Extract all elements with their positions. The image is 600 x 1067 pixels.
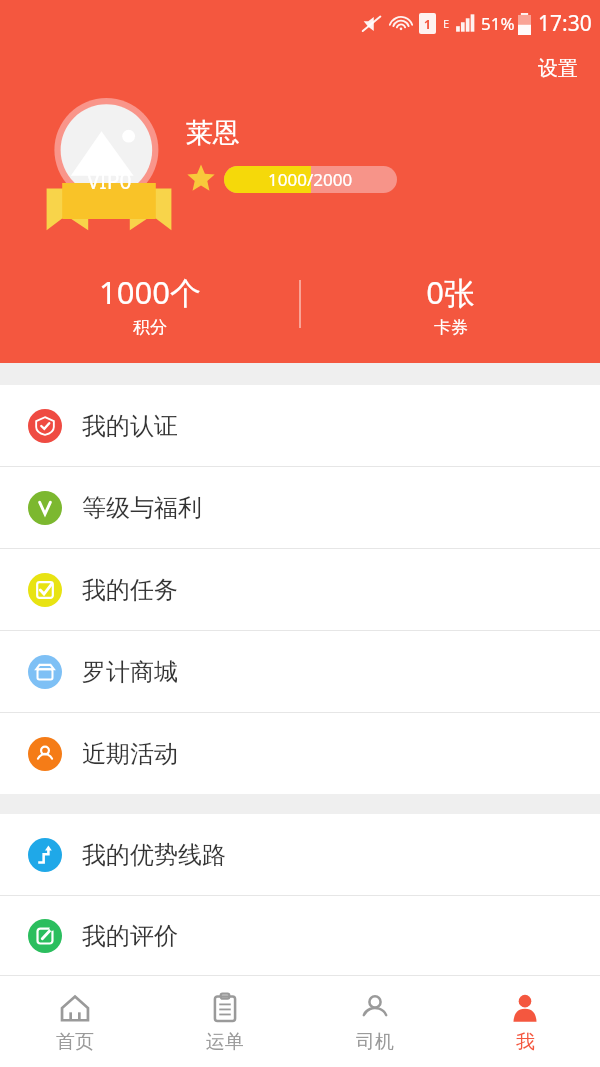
staticText: 首页 bbox=[56, 1030, 94, 1054]
staticText: 卡券 bbox=[434, 317, 468, 338]
staticText: 我的认证 bbox=[82, 411, 178, 441]
staticText: 罗计商城 bbox=[82, 657, 178, 687]
staticText: 1 bbox=[424, 16, 431, 32]
staticText: E bbox=[443, 16, 450, 31]
button[interactable]: 我的认证 bbox=[0, 385, 600, 466]
staticText: 17:30 bbox=[538, 9, 592, 38]
staticText: 51% bbox=[481, 12, 515, 35]
button[interactable]: VIP0 bbox=[44, 90, 174, 240]
staticText: 1000/2000 bbox=[268, 168, 353, 191]
staticText: VIP0 bbox=[87, 167, 132, 196]
staticText: 设置 bbox=[538, 56, 578, 81]
staticText: 0张 bbox=[426, 271, 475, 313]
button[interactable]: 0张 bbox=[301, 256, 600, 352]
staticText: 我的评价 bbox=[82, 921, 178, 951]
staticText: 运单 bbox=[206, 1030, 244, 1054]
button[interactable]: 等级与福利 bbox=[0, 467, 600, 548]
button[interactable]: 我的优势线路 bbox=[0, 814, 600, 895]
button[interactable]: 我的评价 bbox=[0, 896, 600, 975]
staticText: 司机 bbox=[356, 1030, 394, 1054]
button[interactable]: 我的任务 bbox=[0, 549, 600, 630]
staticText: 1000个 bbox=[99, 271, 201, 313]
button[interactable]: 罗计商城 bbox=[0, 631, 600, 712]
staticText: 近期活动 bbox=[82, 739, 178, 769]
button[interactable]: 1000个 bbox=[0, 256, 299, 352]
staticText: 积分 bbox=[133, 317, 167, 338]
button[interactable]: 运单 bbox=[150, 976, 300, 1067]
staticText: 莱恩 bbox=[186, 116, 240, 150]
button[interactable]: 我 bbox=[450, 976, 600, 1067]
staticText: 我 bbox=[516, 1030, 535, 1054]
staticText: 我的优势线路 bbox=[82, 840, 226, 870]
button[interactable]: 设置 bbox=[516, 52, 600, 85]
button[interactable]: 司机 bbox=[300, 976, 450, 1067]
button[interactable]: 首页 bbox=[0, 976, 150, 1067]
staticText: 我的任务 bbox=[82, 575, 178, 605]
staticText: 等级与福利 bbox=[82, 493, 202, 523]
button[interactable]: 近期活动 bbox=[0, 713, 600, 794]
